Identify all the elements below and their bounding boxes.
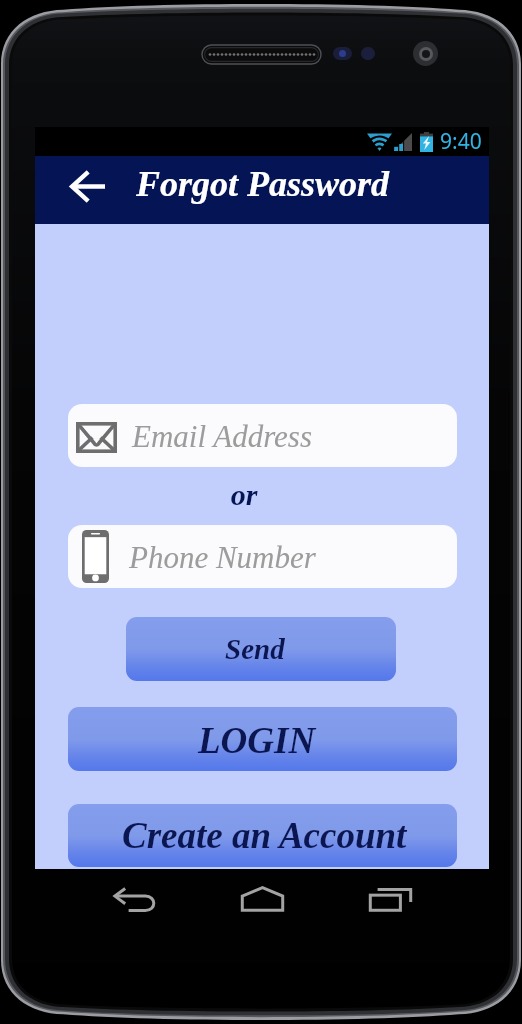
button[interactable]: Phone Number [68, 525, 457, 588]
button[interactable]: LOGIN [68, 707, 457, 771]
button[interactable]: Create an Account [68, 804, 457, 867]
staticText: Forgot Password [136, 164, 390, 204]
button[interactable]: Email Address [68, 404, 457, 467]
button[interactable]: Home [234, 869, 290, 921]
button[interactable]: Back [107, 869, 163, 921]
staticText: LOGIN [198, 720, 316, 761]
staticText: 9:40 [440, 127, 482, 156]
button[interactable]: Send [126, 617, 396, 681]
button[interactable]: Back [62, 161, 112, 211]
staticText: Send [225, 633, 285, 665]
staticText: or [17, 478, 471, 511]
button[interactable]: Recents [362, 869, 418, 921]
staticText: Create an Account [122, 815, 407, 856]
staticText: Email Address [132, 419, 312, 453]
staticText: Phone Number [129, 540, 316, 574]
